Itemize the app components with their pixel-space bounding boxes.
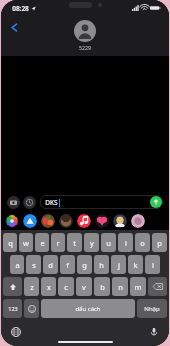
staticText: y: [90, 238, 94, 248]
button[interactable]: o: [135, 233, 150, 252]
staticText: p: [157, 238, 162, 248]
button[interactable]: i: [118, 233, 133, 252]
staticText: x: [47, 282, 51, 292]
button[interactable]: DKS: [40, 195, 163, 209]
staticText: t: [73, 238, 76, 248]
button[interactable]: Camera: [7, 196, 20, 209]
button[interactable]: z: [24, 277, 39, 296]
staticText: n: [118, 282, 123, 292]
button[interactable]: b: [94, 277, 110, 296]
button[interactable]: q: [3, 233, 17, 252]
button[interactable]: y: [84, 233, 99, 252]
button[interactable]: h: [94, 255, 109, 274]
staticText: DKS: [45, 198, 58, 207]
button[interactable]: Apps: [23, 196, 36, 209]
button[interactable]: k: [128, 255, 143, 274]
button[interactable]: n: [112, 277, 128, 296]
button[interactable]: Contact: [113, 214, 127, 228]
button[interactable]: Memoji: [59, 214, 73, 228]
button[interactable]: p: [152, 233, 167, 252]
staticText: q: [8, 238, 13, 248]
staticText: d: [48, 260, 53, 270]
button[interactable]: App Store: [23, 214, 37, 228]
staticText: z: [30, 282, 34, 292]
button[interactable]: Back: [6, 19, 22, 35]
button[interactable]: u: [101, 233, 116, 252]
staticText: h: [99, 260, 104, 270]
staticText: o: [140, 238, 145, 248]
staticText: m: [134, 282, 142, 292]
staticText: 123: [8, 305, 18, 312]
staticText: a: [15, 260, 20, 270]
staticText: Nhập: [144, 305, 160, 313]
button[interactable]: Photos: [5, 214, 19, 228]
button[interactable]: a: [10, 255, 24, 274]
staticText: g: [82, 260, 87, 270]
button[interactable]: j: [111, 255, 126, 274]
button[interactable]: s: [26, 255, 41, 274]
staticText: f: [66, 260, 69, 270]
button[interactable]: Dictation: [146, 324, 162, 340]
staticText: i: [125, 238, 127, 248]
button[interactable]: v: [76, 277, 92, 296]
staticText: 08:28: [12, 4, 29, 13]
staticText: u: [106, 238, 111, 248]
button[interactable]: More: [131, 214, 145, 228]
staticText: e: [40, 238, 45, 248]
button[interactable]: r: [51, 233, 65, 252]
button[interactable]: Digital Touch: [95, 214, 109, 228]
button[interactable]: Emoji: [24, 299, 39, 318]
staticText: k: [133, 260, 138, 270]
button[interactable]: l: [145, 255, 160, 274]
staticText: w: [23, 238, 29, 248]
button[interactable]: x: [41, 277, 56, 296]
button[interactable]: m: [130, 277, 146, 296]
button[interactable]: c: [58, 277, 74, 296]
staticText: 5229: [79, 44, 91, 51]
button[interactable]: g: [77, 255, 92, 274]
staticText: s: [32, 260, 36, 270]
button[interactable]: w: [19, 233, 33, 252]
button[interactable]: Send: [150, 196, 162, 208]
button[interactable]: Shift: [3, 277, 22, 296]
button[interactable]: 123: [3, 299, 22, 318]
button[interactable]: dấu cách: [41, 299, 135, 318]
button[interactable]: Change keyboard: [8, 324, 24, 340]
staticText: b: [100, 282, 105, 292]
button[interactable]: t: [67, 233, 82, 252]
button[interactable]: Music: [77, 214, 91, 228]
staticText: j: [118, 260, 120, 270]
button[interactable]: Delete: [148, 277, 167, 296]
staticText: c: [64, 282, 68, 292]
button[interactable]: Nhập: [137, 299, 167, 318]
staticText: v: [82, 282, 86, 292]
button[interactable]: Photo: [41, 214, 55, 228]
button[interactable]: f: [60, 255, 75, 274]
button[interactable]: e: [35, 233, 49, 252]
staticText: l: [152, 260, 154, 270]
button[interactable]: d: [43, 255, 58, 274]
staticText: dấu cách: [75, 305, 101, 313]
button[interactable]: 5229: [74, 20, 96, 51]
staticText: r: [56, 238, 60, 248]
